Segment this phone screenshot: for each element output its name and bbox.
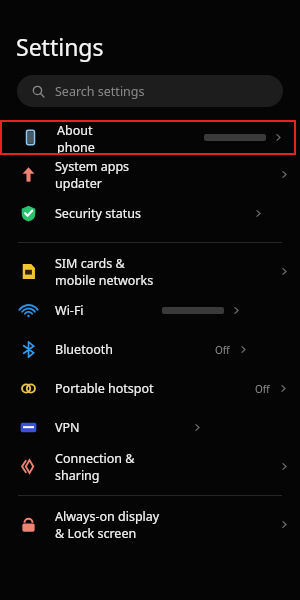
staticText: System apps updater (55, 158, 167, 192)
staticText: Off (255, 382, 270, 396)
staticText: Always-on display & Lock screen (55, 508, 167, 542)
button[interactable]: Security status (0, 194, 300, 233)
button[interactable]: System apps updater (0, 155, 300, 194)
staticText: Connection & sharing (55, 450, 167, 484)
button[interactable]: Search settings (17, 75, 283, 107)
button[interactable]: Wi-Fi (0, 291, 300, 330)
button[interactable]: Always-on display & Lock screen (0, 505, 300, 544)
staticText: Wi-Fi (55, 302, 84, 319)
button[interactable]: Portable hotspot (0, 369, 300, 408)
staticText: Search settings (55, 83, 145, 100)
button[interactable]: VPN (0, 408, 300, 447)
staticText: Off (215, 343, 230, 357)
staticText: About phone (57, 122, 130, 153)
staticText: VPN (55, 419, 80, 436)
button[interactable]: Connection & sharing (0, 447, 300, 486)
staticText: Security status (55, 205, 141, 222)
staticText: Portable hotspot (55, 380, 154, 397)
staticText: SIM cards & mobile networks (55, 255, 167, 289)
button[interactable]: SIM cards & mobile networks (0, 252, 300, 291)
button[interactable]: Bluetooth (0, 330, 300, 369)
staticText: Settings (16, 31, 104, 62)
staticText: Bluetooth (55, 341, 114, 358)
